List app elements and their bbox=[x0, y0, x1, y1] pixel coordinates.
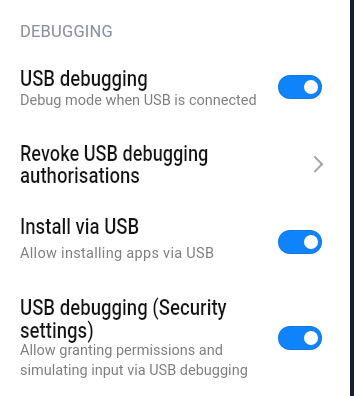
staticText: Allow installing apps via USB bbox=[20, 245, 215, 262]
staticText: settings) bbox=[20, 318, 94, 344]
staticText: USB debugging (Security bbox=[20, 295, 227, 321]
staticText: DEBUGGING bbox=[20, 22, 113, 41]
staticText: USB debugging bbox=[20, 66, 148, 92]
staticText: simulating input via USB debugging bbox=[20, 362, 248, 379]
staticText: Revoke USB debugging bbox=[20, 141, 209, 167]
staticText: Debug mode when USB is connected bbox=[20, 92, 257, 109]
staticText: authorisations bbox=[20, 163, 140, 189]
staticText: Install via USB bbox=[20, 214, 140, 240]
staticText: Allow granting permissions and bbox=[20, 342, 223, 359]
